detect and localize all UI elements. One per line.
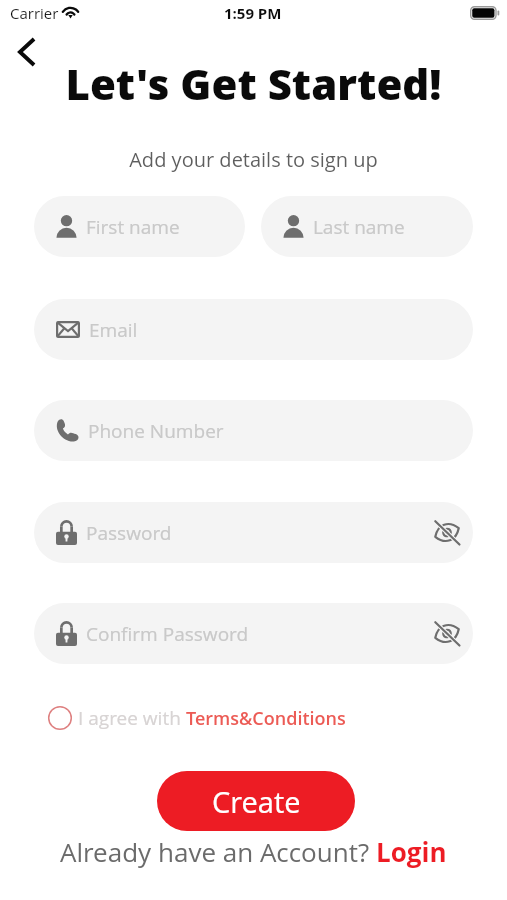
staticText: Password	[86, 520, 172, 546]
button[interactable]: Show password	[434, 520, 460, 545]
button[interactable]: I agree with	[47, 702, 346, 734]
staticText: First name	[86, 214, 180, 240]
button[interactable]: Password	[34, 502, 473, 563]
button[interactable]: Last name	[261, 196, 473, 257]
staticText: Let's Get Started!	[0, 55, 507, 112]
staticText: Phone Number	[88, 418, 224, 444]
button[interactable]: Back	[5, 30, 49, 74]
staticText: Terms&Conditions	[186, 706, 346, 731]
staticText: Confirm Password	[86, 621, 249, 647]
staticText: Add your details to sign up	[0, 146, 507, 173]
staticText: I agree with	[78, 705, 186, 731]
button[interactable]: Confirm Password	[34, 603, 473, 664]
button[interactable]: Login	[376, 834, 447, 869]
staticText: 1:59 PM	[224, 3, 282, 23]
staticText: Already have an Account?	[60, 834, 376, 869]
staticText: Last name	[313, 214, 405, 240]
button[interactable]: Show password	[434, 621, 460, 646]
button[interactable]: First name	[34, 196, 245, 257]
staticText: Email	[89, 317, 138, 343]
staticText: Carrier	[10, 3, 59, 23]
button[interactable]: Email	[34, 299, 473, 360]
staticText: Create	[212, 782, 301, 821]
button[interactable]: Create	[157, 771, 355, 831]
button[interactable]: Phone Number	[34, 400, 473, 461]
